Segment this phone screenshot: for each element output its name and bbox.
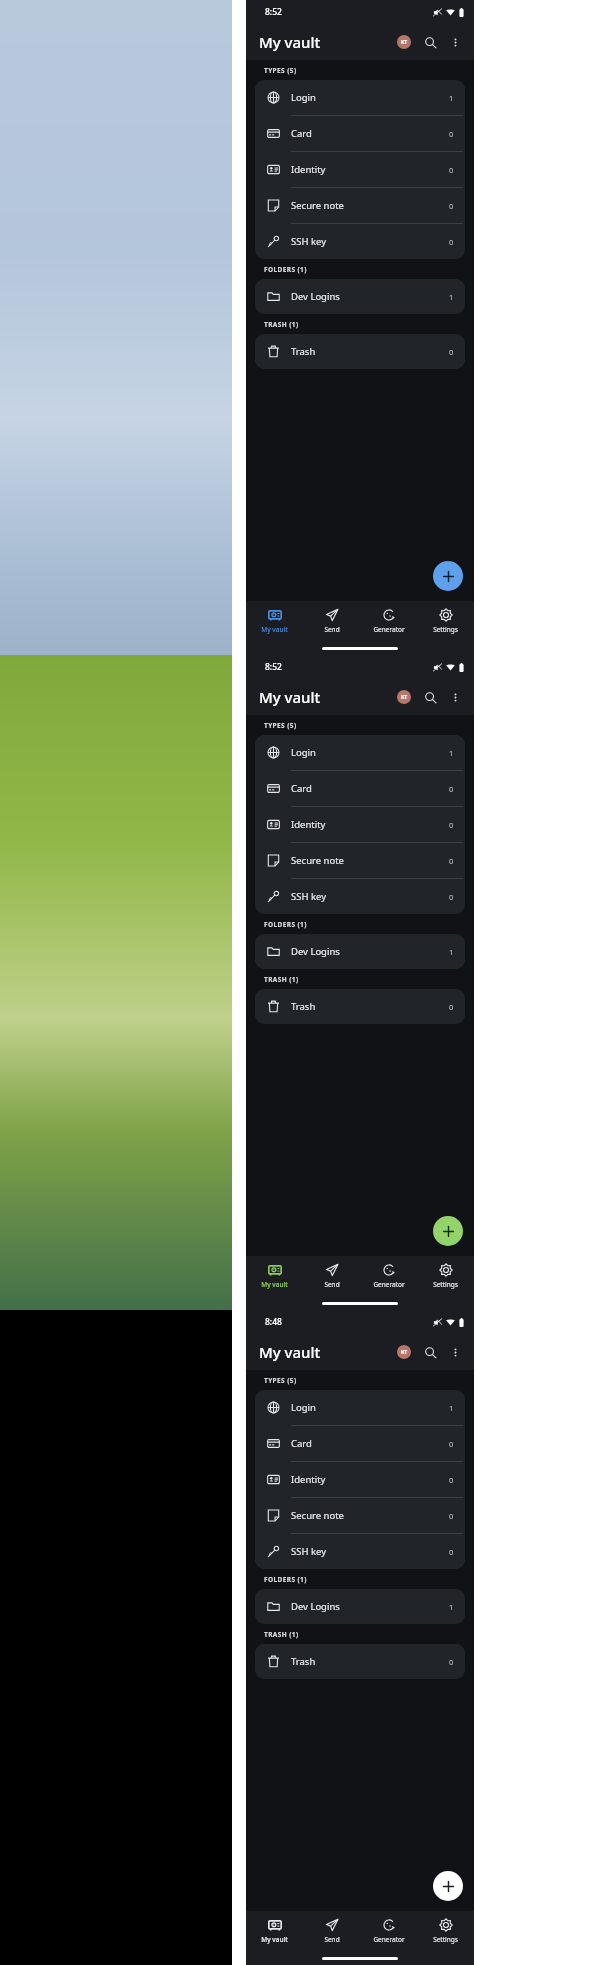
button[interactable]: Secure note [255, 188, 465, 223]
staticText: 0 [449, 856, 454, 866]
staticText: My vault [261, 625, 288, 634]
button[interactable]: SSH key [255, 1534, 465, 1569]
staticText: 0 [449, 129, 454, 139]
staticText: Identity [291, 163, 326, 176]
button[interactable]: Trash [255, 989, 465, 1024]
button[interactable]: Identity [255, 152, 465, 187]
staticText: Secure note [291, 199, 344, 212]
button[interactable]: Account [397, 35, 411, 49]
button[interactable]: Identity [255, 807, 465, 842]
button[interactable]: Secure note [255, 843, 465, 878]
staticText: 1 [449, 93, 454, 103]
button[interactable]: Trash [255, 1644, 465, 1679]
button[interactable]: Trash [255, 334, 465, 369]
staticText: My vault [259, 1342, 321, 1362]
staticText: FOLDERS (1) [264, 265, 307, 274]
button[interactable]: Search [420, 687, 440, 707]
button[interactable]: Card [255, 116, 465, 151]
staticText: Card [291, 127, 312, 140]
button[interactable]: Add item [433, 561, 463, 591]
button[interactable]: Search [420, 1342, 440, 1362]
button[interactable]: SSH key [255, 224, 465, 259]
staticText: My vault [261, 1280, 288, 1289]
staticText: 0 [449, 892, 454, 902]
button[interactable]: Dev Logins [255, 1589, 465, 1624]
button[interactable]: Login [255, 80, 465, 115]
button[interactable]: My vault [246, 601, 303, 641]
staticText: TYPES (5) [264, 1376, 297, 1385]
button[interactable]: Card [255, 1426, 465, 1461]
staticText: 0 [449, 165, 454, 175]
staticText: Secure note [291, 854, 344, 867]
staticText: SSH key [291, 235, 327, 248]
button[interactable]: Card [255, 771, 465, 806]
staticText: Send [324, 1280, 340, 1289]
button[interactable]: Login [255, 735, 465, 770]
staticText: 0 [449, 1657, 454, 1667]
staticText: Login [291, 746, 316, 759]
staticText: Settings [433, 625, 458, 634]
staticText: 8:52 [265, 661, 282, 673]
staticText: Send [324, 1935, 340, 1944]
staticText: 0 [449, 1547, 454, 1557]
button[interactable]: More options [445, 1342, 465, 1362]
button[interactable]: Generator [360, 1911, 417, 1951]
button[interactable]: Generator [360, 1256, 417, 1296]
button[interactable]: Search [420, 32, 440, 52]
button[interactable]: Identity [255, 1462, 465, 1497]
button[interactable]: Send [303, 1256, 360, 1296]
staticText: TYPES (5) [264, 721, 297, 730]
staticText: TYPES (5) [264, 66, 297, 75]
staticText: FOLDERS (1) [264, 1575, 307, 1584]
button[interactable]: Generator [360, 601, 417, 641]
staticText: Send [324, 625, 340, 634]
staticText: 0 [449, 1475, 454, 1485]
button[interactable]: Account [397, 690, 411, 704]
staticText: Trash [291, 345, 316, 358]
staticText: Identity [291, 1473, 326, 1486]
button[interactable]: Send [303, 1911, 360, 1951]
staticText: Secure note [291, 1509, 344, 1522]
button[interactable]: Settings [417, 601, 474, 641]
staticText: Trash [291, 1000, 316, 1013]
staticText: Card [291, 782, 312, 795]
button[interactable]: Add item [433, 1216, 463, 1246]
staticText: Settings [433, 1935, 458, 1944]
button[interactable]: SSH key [255, 879, 465, 914]
staticText: 0 [449, 201, 454, 211]
staticText: 1 [449, 947, 454, 957]
staticText: Login [291, 1401, 316, 1414]
staticText: Dev Logins [291, 290, 340, 303]
button[interactable]: Dev Logins [255, 934, 465, 969]
staticText: 1 [449, 292, 454, 302]
staticText: 8:48 [265, 1316, 282, 1328]
staticText: Settings [433, 1280, 458, 1289]
staticText: 0 [449, 1002, 454, 1012]
staticText: TRASH (1) [264, 320, 299, 329]
staticText: Trash [291, 1655, 316, 1668]
staticText: 1 [449, 1403, 454, 1413]
staticText: KT [401, 1349, 408, 1356]
button[interactable]: More options [445, 687, 465, 707]
button[interactable]: Settings [417, 1911, 474, 1951]
button[interactable]: My vault [246, 1256, 303, 1296]
staticText: Generator [373, 625, 405, 634]
staticText: SSH key [291, 1545, 327, 1558]
button[interactable]: More options [445, 32, 465, 52]
staticText: KT [401, 39, 408, 46]
button[interactable]: Send [303, 601, 360, 641]
button[interactable]: Account [397, 1345, 411, 1359]
button[interactable]: Settings [417, 1256, 474, 1296]
staticText: Dev Logins [291, 1600, 340, 1613]
staticText: Login [291, 91, 316, 104]
button[interactable]: Add item [433, 1871, 463, 1901]
button[interactable]: Login [255, 1390, 465, 1425]
staticText: 8:52 [265, 6, 282, 18]
staticText: My vault [259, 687, 321, 707]
staticText: FOLDERS (1) [264, 920, 307, 929]
staticText: 0 [449, 1511, 454, 1521]
button[interactable]: My vault [246, 1911, 303, 1951]
button[interactable]: Secure note [255, 1498, 465, 1533]
staticText: KT [401, 694, 408, 701]
button[interactable]: Dev Logins [255, 279, 465, 314]
